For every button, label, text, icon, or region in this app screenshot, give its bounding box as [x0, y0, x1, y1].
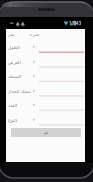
staticText: متر: [8, 32, 15, 37]
staticText: ▾: [33, 103, 35, 107]
button[interactable]: سمك الجدار: [7, 86, 36, 96]
button[interactable]: الطول: [7, 42, 36, 52]
button[interactable]: تم: [11, 128, 81, 137]
button[interactable]: السمك: [7, 71, 36, 81]
staticText: النوع: [8, 118, 17, 123]
staticText: 17:43: [69, 20, 82, 27]
staticText: العدد: [8, 103, 18, 108]
staticText: الطول: [8, 45, 20, 50]
staticText: ▾: [33, 45, 35, 49]
staticText: ▾: [33, 89, 35, 93]
staticText: العرض: [8, 60, 21, 65]
staticText: سمك الجدار: [8, 88, 31, 94]
staticText: ▾: [33, 60, 35, 64]
staticText: ▾: [33, 118, 35, 122]
button[interactable]: العرض: [7, 57, 36, 67]
button[interactable]: النوع: [7, 115, 36, 125]
staticText: تم: [44, 130, 49, 135]
staticText: ▾: [30, 33, 32, 37]
staticText: ▾: [33, 74, 35, 78]
button[interactable]: العدد: [7, 100, 36, 110]
staticText: السمك: [8, 74, 22, 79]
staticText: متر: [33, 32, 40, 37]
